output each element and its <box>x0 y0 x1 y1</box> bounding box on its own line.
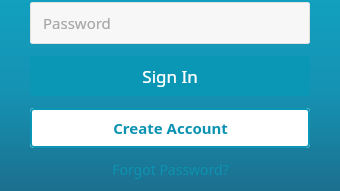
button[interactable]: Forgot Password? <box>30 154 310 184</box>
button[interactable]: Sign In <box>30 56 310 96</box>
staticText: Forgot Password? <box>112 160 229 179</box>
staticText: Password <box>43 13 111 33</box>
button[interactable]: Create Account <box>30 108 310 148</box>
button[interactable]: Password <box>30 2 310 44</box>
staticText: Create Account <box>113 118 228 138</box>
staticText: Sign In <box>142 65 198 88</box>
